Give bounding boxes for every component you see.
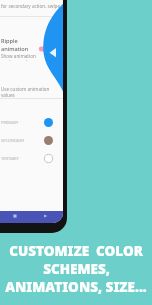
staticText: SCHEMES, [43, 260, 110, 278]
button[interactable]: Use custom animation values [0, 85, 63, 98]
staticText: TERTIARY [1, 156, 44, 161]
staticText: Show animation on drag and [1, 53, 38, 61]
staticText: Use custom animation values [1, 86, 63, 98]
button[interactable]: for secondary action, swipe [0, 0, 63, 16]
staticText: CUSTOMIZE COLOR [9, 242, 143, 260]
staticText: ANIMATIONS, SIZE... [5, 278, 147, 296]
staticText: Ripple animation [1, 37, 38, 53]
button[interactable]: TERTIARY [0, 149, 63, 167]
button[interactable]: Toggle ripple animation [38, 43, 54, 55]
staticText: for secondary action, swipe [1, 3, 60, 9]
button[interactable]: SECONDARY [0, 131, 63, 149]
button[interactable]: Pick TERTIARY color [44, 154, 53, 163]
button[interactable]: Pick SECONDARY color [44, 136, 53, 145]
staticText: PRIMARY [1, 120, 44, 125]
button[interactable]: Ripple animation [0, 37, 63, 61]
button[interactable]: PRIMARY [0, 113, 63, 131]
button[interactable]: Pick PRIMARY color [44, 118, 53, 127]
staticText: SECONDARY [1, 138, 44, 143]
